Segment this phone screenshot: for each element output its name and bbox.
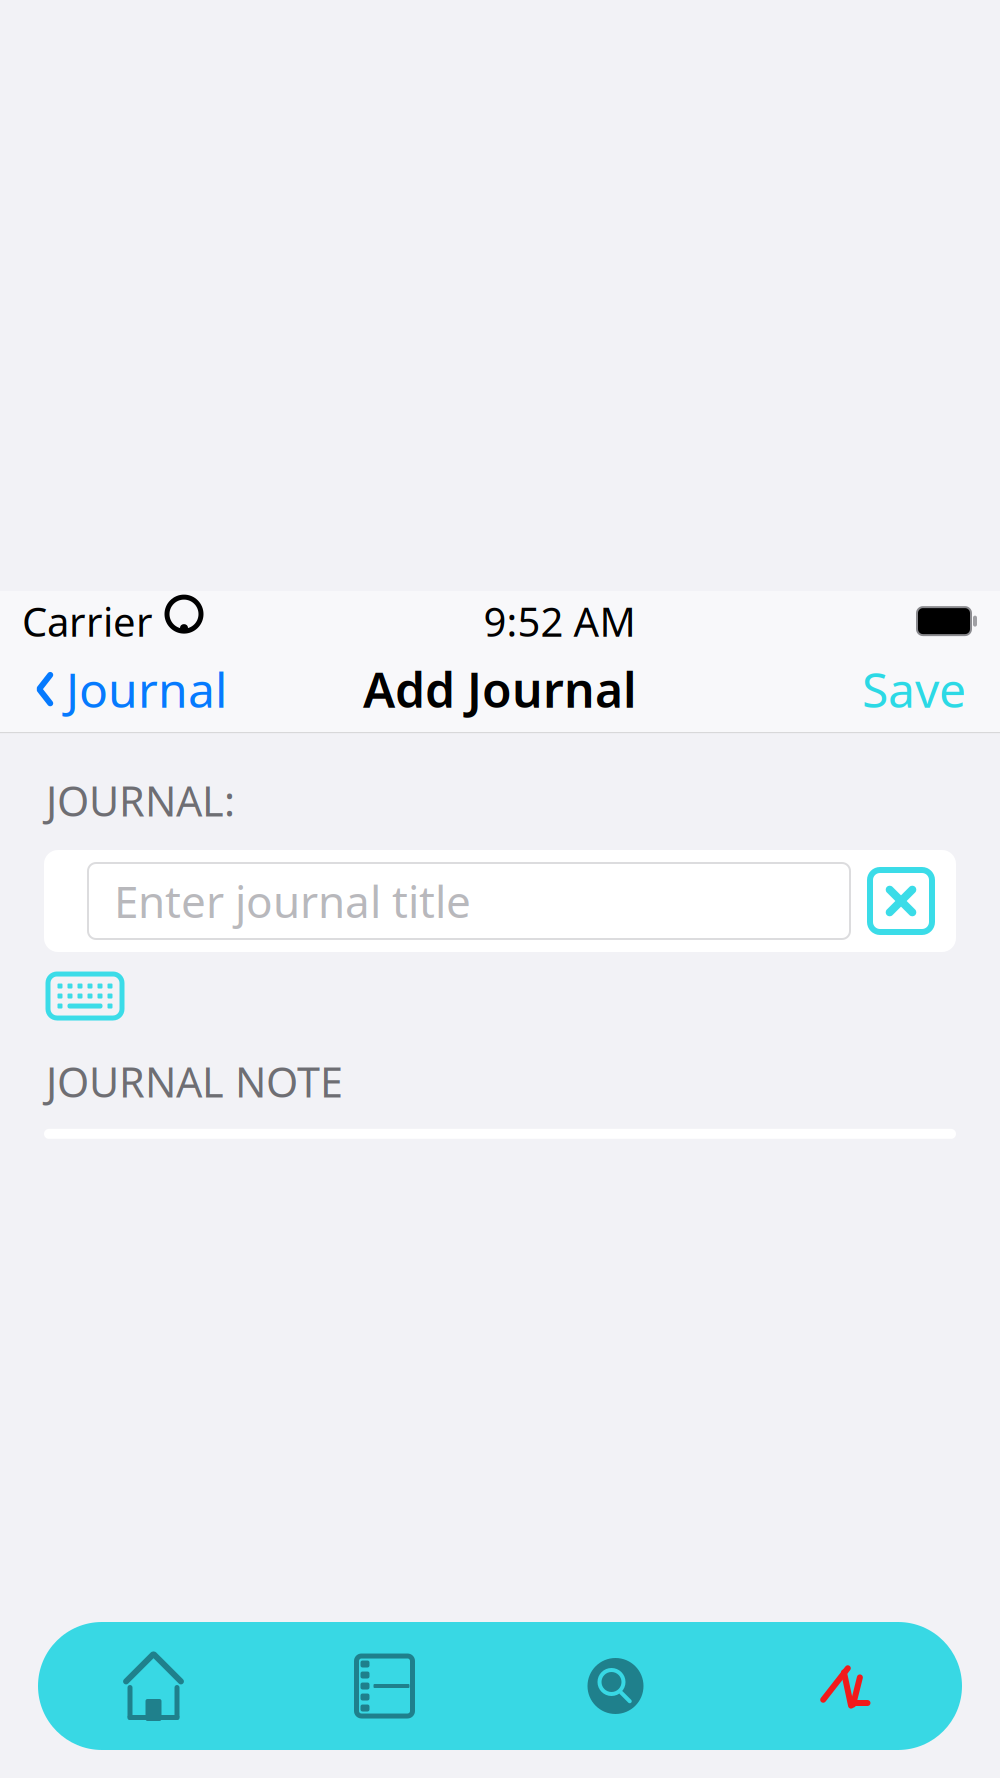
button[interactable]: Journal [24,647,237,731]
staticText: Save [862,657,966,721]
button[interactable]: Show keyboard [0,952,122,1028]
button[interactable]: Save [852,647,976,731]
staticText: Add Journal [363,657,637,721]
staticText: Journal [66,657,227,721]
button[interactable]: Videos [269,1622,500,1750]
staticText: 9:52 AM [483,595,635,648]
button[interactable]: Clear [850,870,956,932]
staticText: JOURNAL: [46,773,235,828]
button[interactable]: Draw [731,1622,962,1750]
staticText: Carrier [22,595,153,648]
staticText: JOURNAL NOTE [46,1054,343,1109]
button[interactable]: Search [500,1622,731,1750]
button[interactable]: Home [38,1622,269,1750]
staticText: Enter journal title [114,872,471,930]
